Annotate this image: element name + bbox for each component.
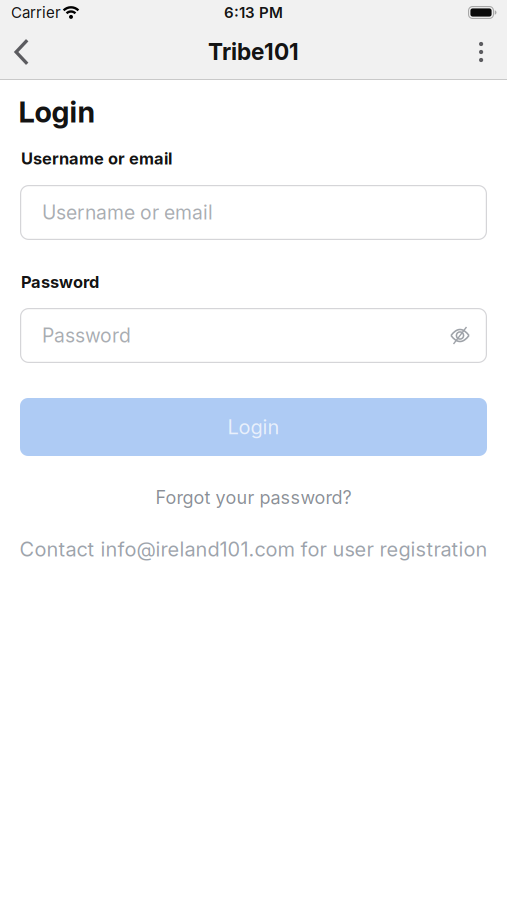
staticText: Password: [42, 324, 131, 347]
secureTextField[interactable]: Password: [20, 308, 487, 363]
staticText: Username or email: [21, 148, 172, 168]
staticText: Username or email: [42, 201, 213, 224]
staticText: Login: [18, 94, 95, 130]
staticText: Forgot your password?: [155, 486, 351, 508]
staticText: Login: [227, 415, 279, 439]
staticText: Tribe101: [208, 38, 299, 65]
staticText: Carrier: [11, 3, 61, 22]
staticText: Password: [21, 272, 99, 292]
textField[interactable]: Username or email: [20, 185, 487, 240]
staticText: Contact info@ireland101.com for user reg…: [19, 537, 487, 561]
button[interactable]: Back: [0, 27, 43, 77]
button[interactable]: Forgot your password?: [147, 480, 359, 514]
staticText: 6:13 PM: [224, 3, 283, 22]
button[interactable]: More options: [463, 27, 499, 77]
button[interactable]: Login: [20, 398, 487, 456]
